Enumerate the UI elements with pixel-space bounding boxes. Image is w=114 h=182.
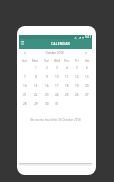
staticText: 12 [75, 75, 79, 79]
staticText: 4 [66, 66, 68, 70]
staticText: 7 [24, 75, 26, 79]
button[interactable]: 8 [30, 72, 41, 81]
button[interactable]: 3 [52, 63, 62, 72]
staticText: 28 [23, 102, 27, 106]
staticText: Thu [64, 59, 70, 63]
button[interactable]: 13 [82, 72, 92, 81]
staticText: 1 [35, 66, 37, 70]
button[interactable]: 2 [41, 63, 52, 72]
button[interactable]: 21 [19, 90, 30, 99]
staticText: Tue [44, 59, 49, 63]
button[interactable]: 30 [41, 99, 52, 108]
button[interactable]: 22 [30, 90, 41, 99]
button[interactable]: 25 [62, 90, 72, 99]
staticText: 3 [56, 66, 58, 70]
staticText: No events found for 23 October 2018 [30, 118, 81, 122]
staticText: Wed [54, 59, 61, 63]
button[interactable]: 23 [41, 90, 52, 99]
staticText: Sun [22, 59, 28, 63]
staticText: 15 [34, 84, 38, 88]
staticText: 2 [46, 66, 48, 70]
button[interactable]: 26 [72, 90, 82, 99]
button[interactable]: 11 [62, 72, 72, 81]
staticText: Fri [75, 59, 79, 63]
staticText: 20 [85, 84, 89, 88]
staticText: 16 [45, 84, 49, 88]
staticText: 13 [85, 75, 89, 79]
staticText: 11 [65, 75, 69, 79]
button[interactable]: 7 [19, 72, 30, 81]
button[interactable]: 15 [30, 81, 41, 90]
button[interactable]: Open navigation menu [21, 41, 24, 45]
staticText: October 2018 [18, 51, 91, 55]
button[interactable]: 19 [72, 81, 82, 90]
button[interactable]: 4 [62, 63, 72, 72]
button[interactable]: 29 [30, 99, 41, 108]
button[interactable]: 1 [30, 63, 41, 72]
staticText: 19 [75, 84, 79, 88]
button[interactable]: 16 [41, 81, 52, 90]
staticText: 5 [76, 66, 78, 70]
staticText: 23 [45, 93, 49, 97]
button[interactable]: Next month [84, 51, 88, 55]
staticText: 6 [86, 66, 88, 70]
staticText: 31 [55, 102, 59, 106]
staticText: 22 [34, 93, 38, 97]
staticText: 25 [65, 93, 69, 97]
button[interactable]: 17 [52, 81, 62, 90]
staticText: 9:21 [85, 35, 91, 39]
staticText: 9 [46, 75, 48, 79]
staticText: 26 [75, 93, 79, 97]
button[interactable]: 9 [41, 72, 52, 81]
staticText: 29 [34, 102, 38, 106]
staticText: 8 [35, 75, 37, 79]
button[interactable]: 20 [82, 81, 92, 90]
button[interactable]: 31 [52, 99, 62, 108]
staticText: 30 [45, 102, 49, 106]
staticText: 27 [85, 93, 89, 97]
button[interactable]: 14 [19, 81, 30, 90]
button[interactable]: Previous month [23, 51, 27, 55]
button[interactable]: 12 [72, 72, 82, 81]
staticText: Mon [32, 59, 39, 63]
staticText: Sat [85, 59, 90, 63]
button[interactable]: 5 [72, 63, 82, 72]
staticText: 17 [55, 84, 59, 88]
staticText: 14 [23, 84, 27, 88]
button[interactable]: 28 [19, 99, 30, 108]
staticText: 10 [55, 75, 59, 79]
button[interactable]: 6 [82, 63, 92, 72]
staticText: 24 [55, 93, 59, 97]
button[interactable]: 27 [82, 90, 92, 99]
staticText: 21 [23, 93, 27, 97]
button[interactable]: 24 [52, 90, 62, 99]
button[interactable]: 18 [62, 81, 72, 90]
staticText: CALENDAR [51, 41, 70, 46]
staticText: 18 [65, 84, 69, 88]
button[interactable]: 10 [52, 72, 62, 81]
